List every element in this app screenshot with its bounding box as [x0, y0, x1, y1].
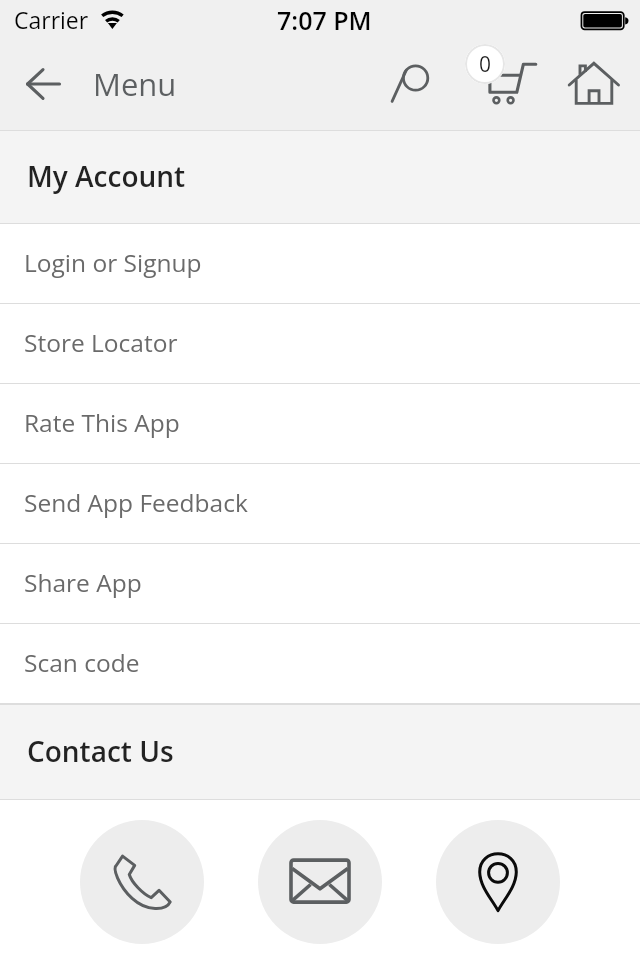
staticText: 0: [479, 50, 492, 79]
staticText: My Account: [27, 157, 186, 195]
staticText: Menu: [93, 63, 177, 105]
staticText: Login or Signup: [24, 246, 202, 279]
button[interactable]: Search: [388, 54, 446, 116]
staticText: 7:07 PM: [277, 3, 372, 37]
button[interactable]: Back: [14, 54, 71, 113]
staticText: Store Locator: [24, 326, 178, 359]
staticText: Contact Us: [27, 732, 174, 770]
staticText: Rate This App: [24, 406, 180, 439]
button[interactable]: Find a store: [436, 820, 560, 944]
staticText: Send App Feedback: [24, 486, 248, 519]
button[interactable]: Call us: [80, 820, 204, 944]
button[interactable]: Rate This App: [0, 384, 640, 464]
button[interactable]: Login or Signup: [0, 224, 640, 304]
button[interactable]: Send App Feedback: [0, 464, 640, 544]
button[interactable]: Share App: [0, 544, 640, 624]
button[interactable]: Email us: [258, 820, 382, 944]
button[interactable]: Shopping cart, 0 items: [462, 45, 546, 111]
staticText: Carrier: [14, 4, 89, 35]
staticText: Share App: [24, 566, 142, 599]
staticText: Scan code: [24, 646, 140, 679]
button[interactable]: Scan code: [0, 624, 640, 704]
button[interactable]: Store Locator: [0, 304, 640, 384]
button[interactable]: Home: [563, 51, 625, 107]
